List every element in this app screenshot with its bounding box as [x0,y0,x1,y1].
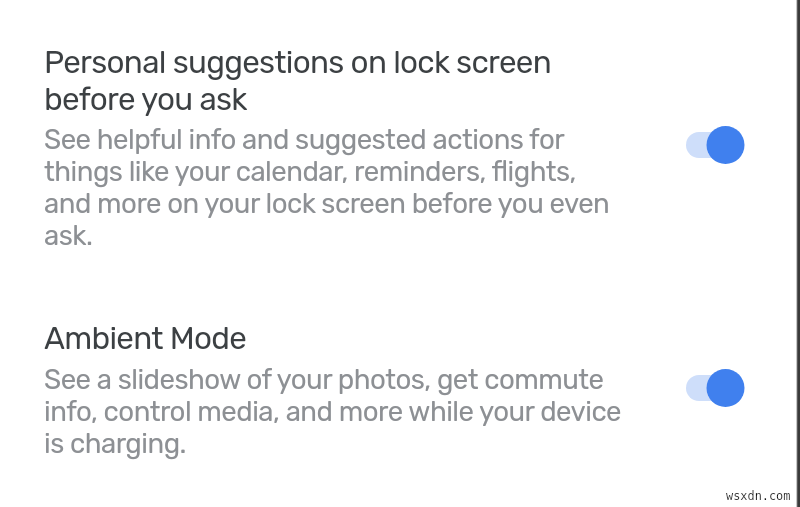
button[interactable]: Ambient Mode [685,362,757,414]
button[interactable]: Personal suggestions on lock screen befo… [0,18,800,276]
staticText: Personal suggestions on lock screen befo… [44,44,551,118]
staticText: See helpful info and suggested actions f… [44,123,610,252]
staticText: See a slideshow of your photos, get comm… [44,363,622,460]
button[interactable]: Ambient Mode [0,296,800,482]
staticText: Ambient Mode [44,320,247,357]
button[interactable]: Personal suggestions on lock screen befo… [685,119,757,171]
staticText: wsxdn.com [726,489,791,503]
